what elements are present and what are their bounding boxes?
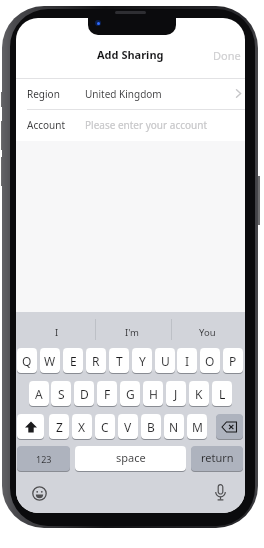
staticText: L [219,386,226,402]
button[interactable]: A [29,381,49,406]
button[interactable]: U [155,348,175,373]
button[interactable] [216,414,243,439]
staticText: X [78,419,86,435]
button[interactable]: L [212,381,232,406]
staticText: F [104,386,111,402]
button[interactable] [210,482,231,504]
staticText: W [44,353,56,369]
button[interactable]: I [20,323,93,341]
staticText: Done [213,48,241,63]
staticText: space [116,450,146,465]
staticText: T [116,353,123,369]
button[interactable]: G [120,381,140,406]
button[interactable]: I [177,348,197,373]
button[interactable]: 123 [17,446,70,471]
staticText: United Kingdom [85,87,162,101]
staticText: N [169,419,179,435]
staticText: Add Sharing [97,47,164,62]
staticText: O [205,353,215,369]
button[interactable]: You [171,323,244,341]
button[interactable]: return [191,446,243,471]
staticText: Y [139,353,146,369]
staticText: Z [56,419,63,435]
button[interactable]: P [223,348,243,373]
button[interactable]: F [97,381,117,406]
button[interactable]: D [74,381,94,406]
staticText: I'm [125,326,139,339]
button[interactable]: Y [132,348,152,373]
button[interactable]: Z [49,414,69,439]
staticText: E [70,353,77,369]
button[interactable]: C [95,414,115,439]
button[interactable]: R [86,348,106,373]
button[interactable] [29,483,49,503]
button[interactable] [16,109,245,141]
button[interactable]: H [143,381,163,406]
button[interactable]: O [200,348,220,373]
staticText: C [101,419,109,435]
staticText: M [192,419,203,435]
staticText: Account [27,118,66,132]
staticText: B [147,419,155,435]
staticText: P [229,353,237,369]
staticText: H [149,386,158,402]
button[interactable]: J [166,381,186,406]
staticText: K [195,386,203,402]
button[interactable] [16,78,245,109]
staticText: I [185,353,190,369]
button[interactable]: I'm [95,323,168,341]
button[interactable] [17,414,44,439]
button[interactable]: space [75,446,186,471]
staticText: U [161,353,170,369]
button[interactable]: W [40,348,60,373]
staticText: return [201,450,234,465]
button[interactable]: E [63,348,83,373]
button[interactable]: B [141,414,161,439]
button[interactable]: Done [206,46,241,64]
staticText: 123 [36,453,52,465]
staticText: V [124,419,132,435]
staticText: D [80,386,89,402]
staticText: J [174,386,178,402]
staticText: You [199,326,216,339]
button[interactable]: T [109,348,129,373]
staticText: S [58,386,65,402]
staticText: Q [22,353,32,369]
button[interactable]: K [189,381,209,406]
button[interactable]: N [164,414,184,439]
staticText: G [126,386,135,402]
button[interactable]: X [72,414,92,439]
button[interactable]: V [118,414,138,439]
button[interactable]: Q [17,348,37,373]
staticText: I [55,326,59,339]
button[interactable]: S [51,381,71,406]
staticText: R [92,353,100,369]
staticText: A [35,386,43,402]
button[interactable]: M [187,414,207,439]
staticText: Please enter your account [85,118,207,132]
staticText: Region [27,87,60,101]
